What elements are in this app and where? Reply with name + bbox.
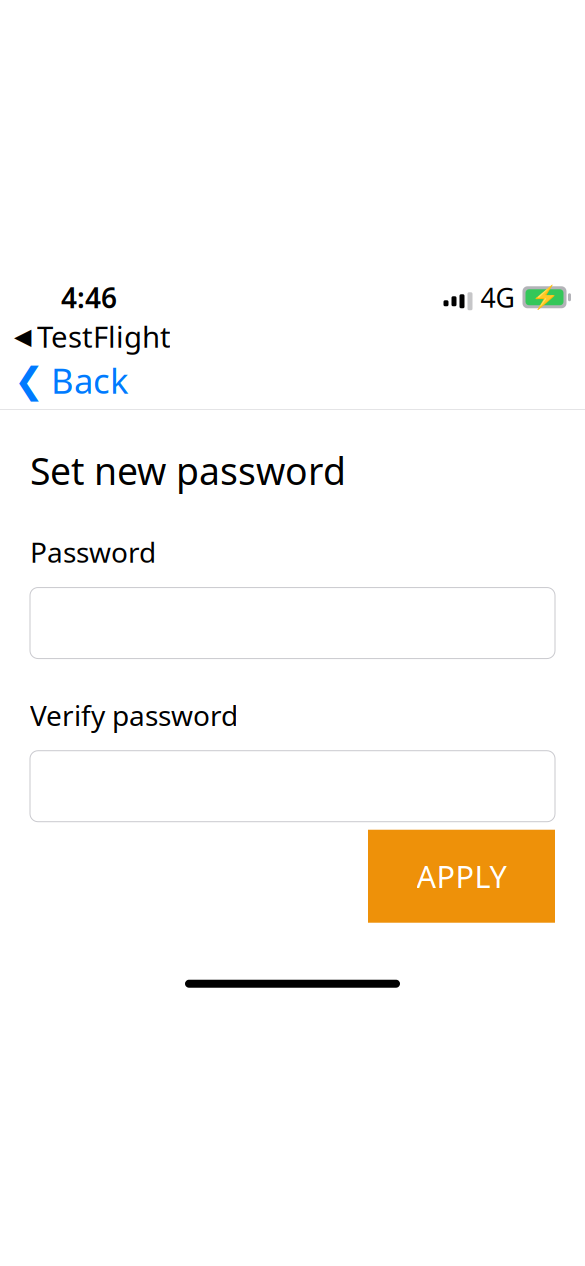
button[interactable]: ❮ bbox=[0, 349, 143, 411]
staticText: 4G bbox=[480, 280, 514, 315]
staticText: TestFlight bbox=[37, 317, 171, 356]
staticText: Password bbox=[30, 533, 156, 571]
staticText: ⚡ bbox=[530, 284, 558, 310]
staticText: Set new password bbox=[30, 446, 346, 495]
staticText: ❮ bbox=[14, 360, 44, 401]
button[interactable]: Password text field bbox=[30, 751, 555, 822]
staticText: Back bbox=[51, 357, 129, 403]
staticText: 4:46 bbox=[61, 279, 117, 316]
staticText: APPLY bbox=[416, 856, 506, 897]
button[interactable]: ◀ bbox=[0, 321, 585, 351]
button[interactable]: APPLY bbox=[368, 830, 555, 923]
staticText: Verify password bbox=[30, 696, 238, 734]
staticText: ◀ bbox=[14, 323, 31, 349]
